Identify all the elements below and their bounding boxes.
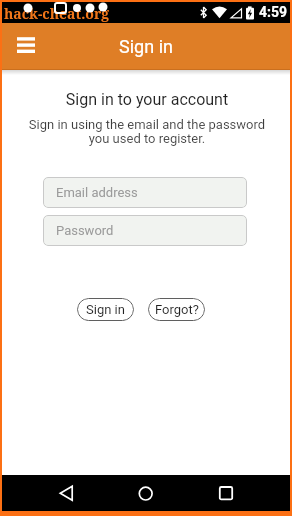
staticText: Sign in using the email and the password… (3, 117, 291, 146)
button[interactable] (194, 475, 290, 511)
staticText: Sign in (86, 302, 125, 317)
staticText: Password (56, 223, 114, 238)
staticText: Sign in (2, 36, 290, 57)
button[interactable] (2, 475, 98, 511)
staticText: 4:59 (259, 4, 288, 20)
staticText: Sign in to your account (3, 90, 291, 109)
button[interactable]: Forgot? (148, 298, 205, 321)
staticText: Forgot? (155, 302, 199, 317)
staticText: hack-cheat.org (4, 4, 110, 23)
button[interactable] (9, 28, 43, 62)
button[interactable]: Email address (43, 177, 247, 208)
button[interactable] (98, 475, 194, 511)
staticText: Email address (56, 185, 138, 200)
button[interactable]: Password (43, 215, 247, 246)
button[interactable]: Sign in (77, 298, 134, 321)
